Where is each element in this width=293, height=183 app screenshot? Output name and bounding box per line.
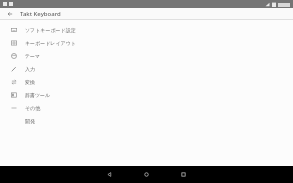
- staticText: 辞書ツール: [25, 92, 51, 98]
- button[interactable]: 辞書ツール: [0, 88, 293, 101]
- button[interactable]: キーボードレイアウト: [0, 36, 293, 49]
- button[interactable]: テーマ: [0, 49, 293, 62]
- button[interactable]: ソフトキーボード設定: [0, 23, 293, 36]
- button[interactable]: Back: [92, 166, 127, 183]
- staticText: 変換: [25, 79, 35, 85]
- staticText: 入力: [25, 66, 35, 72]
- button[interactable]: 変換: [0, 75, 293, 88]
- button[interactable]: その他: [0, 101, 293, 114]
- button[interactable]: Back: [0, 8, 20, 19]
- staticText: キーボードレイアウト: [25, 40, 76, 46]
- staticText: その他: [25, 105, 41, 111]
- staticText: テーマ: [25, 53, 41, 59]
- button[interactable]: 入力: [0, 62, 293, 75]
- button[interactable]: Recent apps: [166, 166, 201, 183]
- staticText: 開発: [25, 118, 35, 124]
- button[interactable]: Home: [129, 166, 164, 183]
- staticText: Takt Keyboard: [20, 10, 61, 18]
- button[interactable]: 開発: [0, 114, 293, 127]
- staticText: ソフトキーボード設定: [25, 27, 76, 33]
